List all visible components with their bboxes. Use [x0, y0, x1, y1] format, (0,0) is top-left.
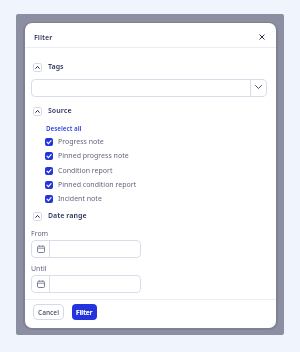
staticText: Filter [76, 308, 93, 317]
staticText: Tags [48, 62, 64, 72]
button[interactable]: Progress note [45, 137, 104, 147]
button[interactable]: Date range [33, 210, 87, 222]
staticText: Condition report [58, 166, 113, 176]
staticText: Filter [34, 33, 53, 43]
button[interactable]: Cancel [33, 304, 64, 320]
staticText: Pinned progress note [58, 151, 129, 161]
staticText: From [31, 229, 49, 239]
button[interactable]: Condition report [45, 166, 113, 176]
button[interactable] [31, 79, 267, 97]
staticText: Until [31, 264, 47, 274]
button[interactable] [255, 30, 268, 43]
button[interactable]: Pinned progress note [45, 151, 129, 161]
button[interactable]: Pinned condition report [45, 180, 137, 190]
staticText: Progress note [58, 137, 104, 147]
button[interactable] [31, 240, 141, 258]
staticText: Pinned condition report [58, 180, 137, 190]
staticText: Source [48, 106, 72, 116]
button[interactable]: Source [33, 105, 72, 117]
button[interactable] [31, 275, 141, 293]
button[interactable]: Tags [33, 61, 64, 73]
staticText: Incident note [58, 194, 102, 204]
button[interactable]: Incident note [45, 194, 102, 204]
button[interactable]: Filter [72, 304, 97, 320]
staticText: Cancel [38, 308, 60, 317]
staticText: Date range [48, 211, 87, 221]
button[interactable]: Deselect all [46, 124, 82, 132]
